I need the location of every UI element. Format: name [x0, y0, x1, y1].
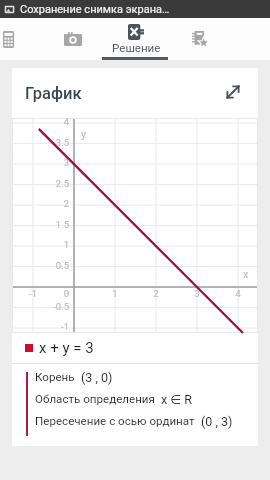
staticText: 4 [34, 116, 69, 127]
staticText: (0 , 3) [201, 414, 233, 429]
staticText: 1.5 [34, 219, 69, 230]
staticText: 1 [105, 288, 125, 299]
staticText: График [25, 84, 82, 103]
staticText: x ∈ R [161, 392, 192, 407]
staticText: 3 [34, 157, 69, 168]
staticText: 4 [228, 288, 248, 299]
staticText: 1 [34, 239, 69, 250]
staticText: 3 [187, 288, 207, 299]
staticText: Область определения [35, 392, 155, 406]
button[interactable]: Калькулятор [0, 18, 40, 60]
staticText: Корень [35, 370, 75, 384]
staticText: -0.5 [34, 301, 69, 312]
staticText: 0 [34, 288, 69, 299]
staticText: 2 [34, 198, 69, 209]
staticText: 2 [146, 288, 166, 299]
staticText: x [243, 268, 249, 281]
staticText: x + y = 3 [39, 339, 94, 357]
staticText: Пересечение с осью ординат [35, 414, 195, 428]
staticText: 3.5 [34, 137, 69, 148]
staticText: Сохранение снимка экрана… [20, 3, 170, 16]
button[interactable]: Решение [103, 18, 169, 60]
staticText: Решение [112, 41, 161, 55]
staticText: (3 , 0) [81, 370, 113, 385]
button[interactable]: Камера [41, 18, 105, 60]
button[interactable]: Избранное [167, 18, 231, 60]
staticText: y [81, 128, 87, 141]
staticText: -1 [23, 288, 43, 299]
button[interactable]: Развернуть [223, 82, 243, 102]
staticText: 0.5 [34, 260, 69, 271]
staticText: -1 [34, 321, 69, 332]
staticText: 2.5 [34, 178, 69, 189]
